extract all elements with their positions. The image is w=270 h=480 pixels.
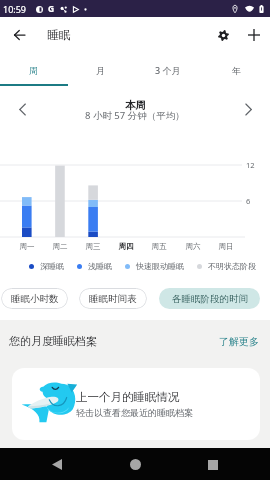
- staticText: 8 小时 57 分钟（平均）: [85, 109, 185, 122]
- staticText: 周: [29, 65, 38, 76]
- staticText: G: [48, 3, 55, 15]
- staticText: 3 个月: [155, 64, 181, 76]
- staticText: 年: [232, 65, 241, 76]
- staticText: 周六: [177, 242, 209, 251]
- staticText: 月: [96, 65, 105, 76]
- button[interactable]: 睡眠时间表: [79, 288, 147, 309]
- button[interactable]: 周: [0, 52, 67, 84]
- staticText: 周三: [77, 242, 109, 251]
- button[interactable]: 月: [67, 52, 134, 84]
- button[interactable]: Home: [129, 458, 141, 470]
- button[interactable]: Add: [240, 21, 268, 49]
- button[interactable]: 年: [202, 52, 270, 84]
- button[interactable]: Previous week: [9, 96, 35, 122]
- staticText: 浅睡眠: [88, 261, 112, 271]
- staticText: 睡眠小时数: [11, 293, 59, 305]
- button[interactable]: 上一个月的睡眠情况: [12, 368, 260, 440]
- staticText: 各睡眠阶段的时间: [172, 293, 248, 305]
- staticText: 本周: [125, 99, 146, 112]
- staticText: 快速眼动睡眠: [136, 261, 184, 271]
- staticText: 10:59: [3, 3, 27, 15]
- staticText: 周二: [44, 242, 76, 251]
- staticText: 周一: [11, 242, 43, 251]
- staticText: 轻击以查看您最近的睡眠档案: [76, 407, 193, 418]
- staticText: 周五: [143, 242, 175, 251]
- button[interactable]: 3 个月: [134, 52, 202, 84]
- button[interactable]: Settings: [209, 21, 237, 49]
- button[interactable]: Next week: [235, 96, 261, 122]
- staticText: 睡眠: [47, 27, 71, 42]
- staticText: 周四: [110, 242, 142, 251]
- staticText: 了解更多: [219, 335, 259, 348]
- button[interactable]: 各睡眠阶段的时间: [159, 288, 260, 309]
- staticText: 深睡眠: [40, 261, 64, 271]
- staticText: 上一个月的睡眠情况: [76, 390, 180, 404]
- button[interactable]: 了解更多: [219, 335, 259, 348]
- button[interactable]: Back: [51, 458, 63, 470]
- staticText: 不明状态阶段: [208, 261, 256, 271]
- staticText: 6: [246, 196, 251, 206]
- button[interactable]: Back: [5, 21, 33, 49]
- staticText: 周日: [210, 242, 242, 251]
- staticText: 睡眠时间表: [89, 293, 137, 305]
- staticText: 12: [246, 160, 255, 170]
- staticText: 您的月度睡眠档案: [9, 334, 97, 348]
- button[interactable]: 睡眠小时数: [1, 288, 68, 309]
- button[interactable]: Recents: [207, 459, 218, 470]
